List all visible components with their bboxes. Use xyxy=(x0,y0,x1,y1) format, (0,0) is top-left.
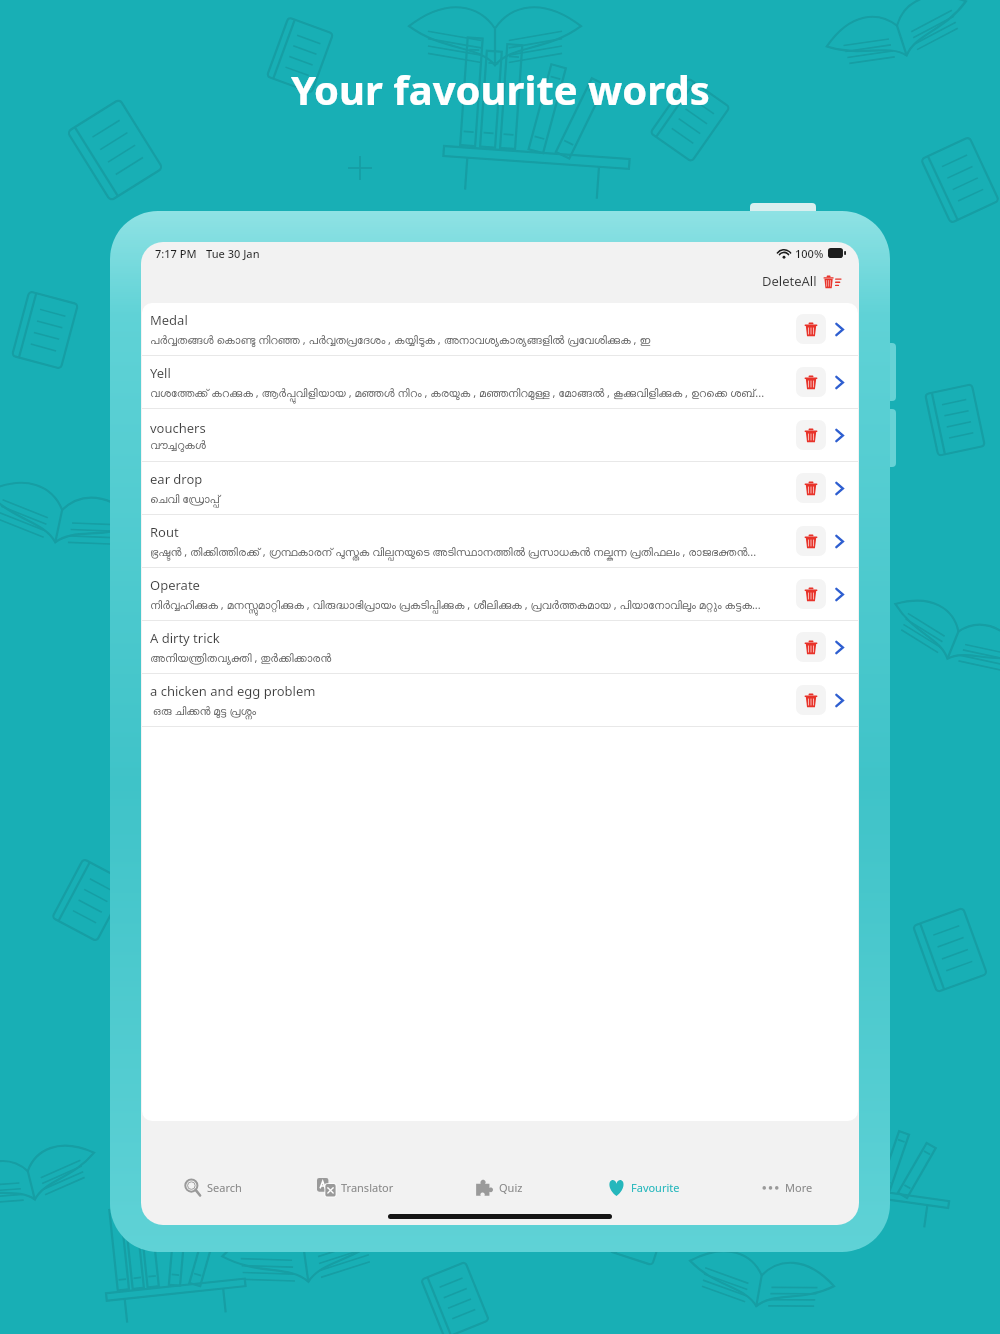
button[interactable]: Rout xyxy=(142,515,858,567)
staticText: 100% xyxy=(795,246,824,261)
staticText: Your favourite words xyxy=(291,62,710,116)
staticText: Operate xyxy=(150,576,200,594)
button[interactable]: Medal xyxy=(142,303,858,355)
button[interactable]: Open details xyxy=(826,369,852,395)
button[interactable]: Quiz xyxy=(427,1167,571,1207)
button[interactable]: Delete word xyxy=(796,473,826,503)
staticText: Favourite xyxy=(631,1180,680,1195)
staticText: Tue 30 Jan xyxy=(206,246,260,261)
button[interactable]: More xyxy=(715,1167,859,1207)
staticText: Rout xyxy=(150,523,179,541)
button[interactable]: Open details xyxy=(826,528,852,554)
button[interactable]: Open details xyxy=(826,581,852,607)
button[interactable]: Delete word xyxy=(796,685,826,715)
staticText: അനിയന്ത്രിതവ്യക്തി , തുർക്കിക്കാരൻ xyxy=(150,650,332,665)
staticText: 7:17 PM xyxy=(155,246,197,261)
button[interactable]: DeleteAll xyxy=(758,269,845,293)
button[interactable]: Delete word xyxy=(796,367,826,397)
staticText: നിർവ്വഹിക്കുക , മനസ്സുമാറ്റിക്കുക , വിരു… xyxy=(150,597,761,612)
staticText: vouchers xyxy=(150,419,206,437)
button[interactable]: Open details xyxy=(826,475,852,501)
button[interactable]: Delete word xyxy=(796,526,826,556)
staticText: Search xyxy=(207,1180,242,1195)
staticText: More xyxy=(785,1180,813,1195)
staticText: DeleteAll xyxy=(762,272,817,290)
staticText: Quiz xyxy=(499,1180,523,1195)
button[interactable]: Operate xyxy=(142,568,858,620)
button[interactable]: vouchers xyxy=(142,409,858,461)
staticText: ear drop xyxy=(150,470,203,488)
staticText: Translator xyxy=(341,1180,394,1195)
button[interactable]: A dirty trick xyxy=(142,621,858,673)
button[interactable]: a chicken and egg problem xyxy=(142,674,858,726)
button[interactable]: Open details xyxy=(826,422,852,448)
button[interactable]: Open details xyxy=(826,316,852,342)
button[interactable]: Yell xyxy=(142,356,858,408)
button[interactable]: Open details xyxy=(826,634,852,660)
staticText: a chicken and egg problem xyxy=(150,682,316,700)
staticText: Yell xyxy=(150,364,171,382)
staticText: A dirty trick xyxy=(150,629,220,647)
button[interactable]: Delete word xyxy=(796,420,826,450)
button[interactable]: Translator xyxy=(284,1167,427,1207)
button[interactable]: Open details xyxy=(826,687,852,713)
button[interactable]: Delete word xyxy=(796,632,826,662)
staticText: പർവ്വതങ്ങൾ കൊണ്ടു നിറഞ്ഞ , പർവ്വതപ്രദേശം… xyxy=(150,332,651,347)
button[interactable]: Favourite xyxy=(571,1167,715,1207)
button[interactable]: ear drop xyxy=(142,462,858,514)
button[interactable]: Search xyxy=(141,1167,284,1207)
staticText: വശത്തേക്ക് കറക്കുക , ആർപ്പുവിളിയായ , മഞ്… xyxy=(150,385,765,400)
staticText: വൗച്ചറുകൾ xyxy=(150,440,206,451)
staticText: ഒരു ചിക്കൻ മുട്ട പ്രശ്നം xyxy=(150,703,257,718)
button[interactable]: Delete word xyxy=(796,314,826,344)
staticText: ഭ്രഷ്ടൻ , തിക്കിത്തിരക്ക് , ഗ്രന്ഥകാരന് … xyxy=(150,544,757,559)
staticText: ചെവി ഡ്രോപ്പ് xyxy=(150,491,220,506)
button[interactable]: Delete word xyxy=(796,579,826,609)
staticText: Medal xyxy=(150,311,188,329)
